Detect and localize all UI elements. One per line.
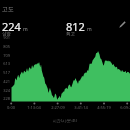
staticText: 901 [0, 35, 10, 40]
staticText: m [23, 26, 28, 33]
button[interactable]: 812 [66, 19, 128, 39]
staticText: 2:27:09 [46, 105, 70, 110]
staticText: 0:00 [0, 105, 23, 110]
staticText: 3:41:14 [69, 105, 93, 110]
staticText: 324 [0, 88, 10, 93]
staticText: m [87, 26, 92, 33]
staticText: 613 [0, 61, 10, 66]
button[interactable]: 224 [2, 19, 64, 39]
staticText: 517 [0, 70, 10, 75]
staticText: 최고 [66, 31, 75, 37]
staticText: 시간(시:분:초) [0, 118, 130, 123]
staticText: 상승 [2, 31, 11, 37]
staticText: 812 [66, 19, 85, 34]
button[interactable]: Edit [116, 18, 128, 30]
staticText: 6:09:24 [115, 105, 130, 110]
staticText: 228 [0, 96, 10, 101]
staticText: 1:13:04 [22, 105, 46, 110]
staticText: 421 [0, 79, 10, 84]
staticText: 805 [0, 44, 10, 49]
staticText: 709 [0, 53, 10, 58]
staticText: 고도 [2, 5, 14, 13]
staticText: 4:55:19 [92, 105, 116, 110]
staticText: 224 [2, 19, 21, 34]
